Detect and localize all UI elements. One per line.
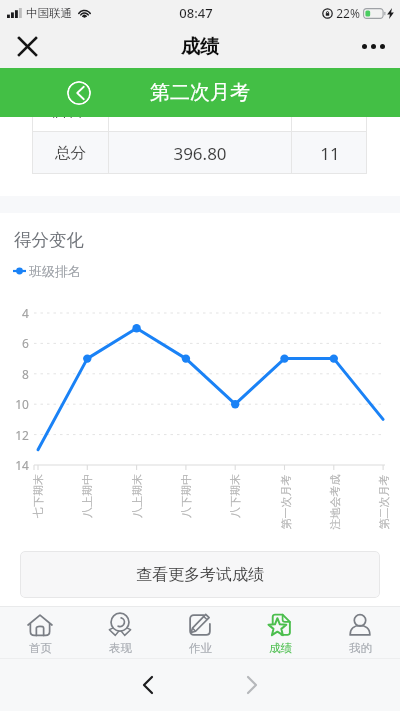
button[interactable]: 表现 (80, 606, 160, 659)
button[interactable]: 前进 (232, 665, 272, 705)
staticText: 11 (320, 142, 340, 165)
staticText: 14 (15, 457, 29, 473)
staticText: 第二次月考 (376, 474, 390, 529)
button[interactable]: 作业 (160, 606, 240, 659)
staticText: 6 (22, 335, 29, 351)
staticText: 22% (336, 5, 360, 21)
staticText: 八下期末 (228, 474, 242, 518)
staticText: 科目 (53, 117, 84, 118)
staticText: 八下期中 (179, 474, 193, 518)
button[interactable]: 我的 (320, 606, 400, 659)
staticText: 12 (15, 427, 29, 443)
staticText: 第一次月考 (278, 474, 292, 529)
staticText: 8 (22, 366, 29, 382)
staticText: 作业 (189, 641, 212, 655)
staticText: 八上期末 (130, 474, 144, 518)
button[interactable]: 成绩 (240, 606, 320, 659)
staticText: 10 (15, 396, 29, 412)
staticText: 注地会考成 (327, 474, 341, 529)
staticText: 我的 (349, 641, 372, 655)
button[interactable]: 首页 (0, 606, 80, 659)
staticText: 首页 (29, 641, 52, 655)
staticText: 中国联通 (26, 6, 72, 20)
button[interactable]: 后退 (128, 665, 168, 705)
button[interactable]: 更多 (351, 25, 395, 68)
staticText: 4 (22, 305, 29, 321)
staticText: 成绩 (181, 35, 219, 59)
button[interactable]: 关闭 (5, 25, 49, 68)
staticText: 第二次月考 (150, 80, 250, 105)
button[interactable]: 查看更多考试成绩 (20, 551, 380, 598)
staticText: 总分 (55, 143, 86, 163)
staticText: 396.80 (173, 142, 227, 165)
staticText: 得分变化 (14, 229, 84, 251)
staticText: 表现 (109, 641, 132, 655)
staticText: 成绩 (269, 641, 292, 655)
staticText: 班级排名 (29, 263, 81, 279)
staticText: 七下期末 (31, 474, 45, 518)
button[interactable]: 上一场考试 (67, 81, 91, 105)
staticText: 查看更多考试成绩 (136, 565, 264, 585)
staticText: 八上期中 (80, 474, 94, 518)
staticText: 08:47 (179, 4, 213, 22)
